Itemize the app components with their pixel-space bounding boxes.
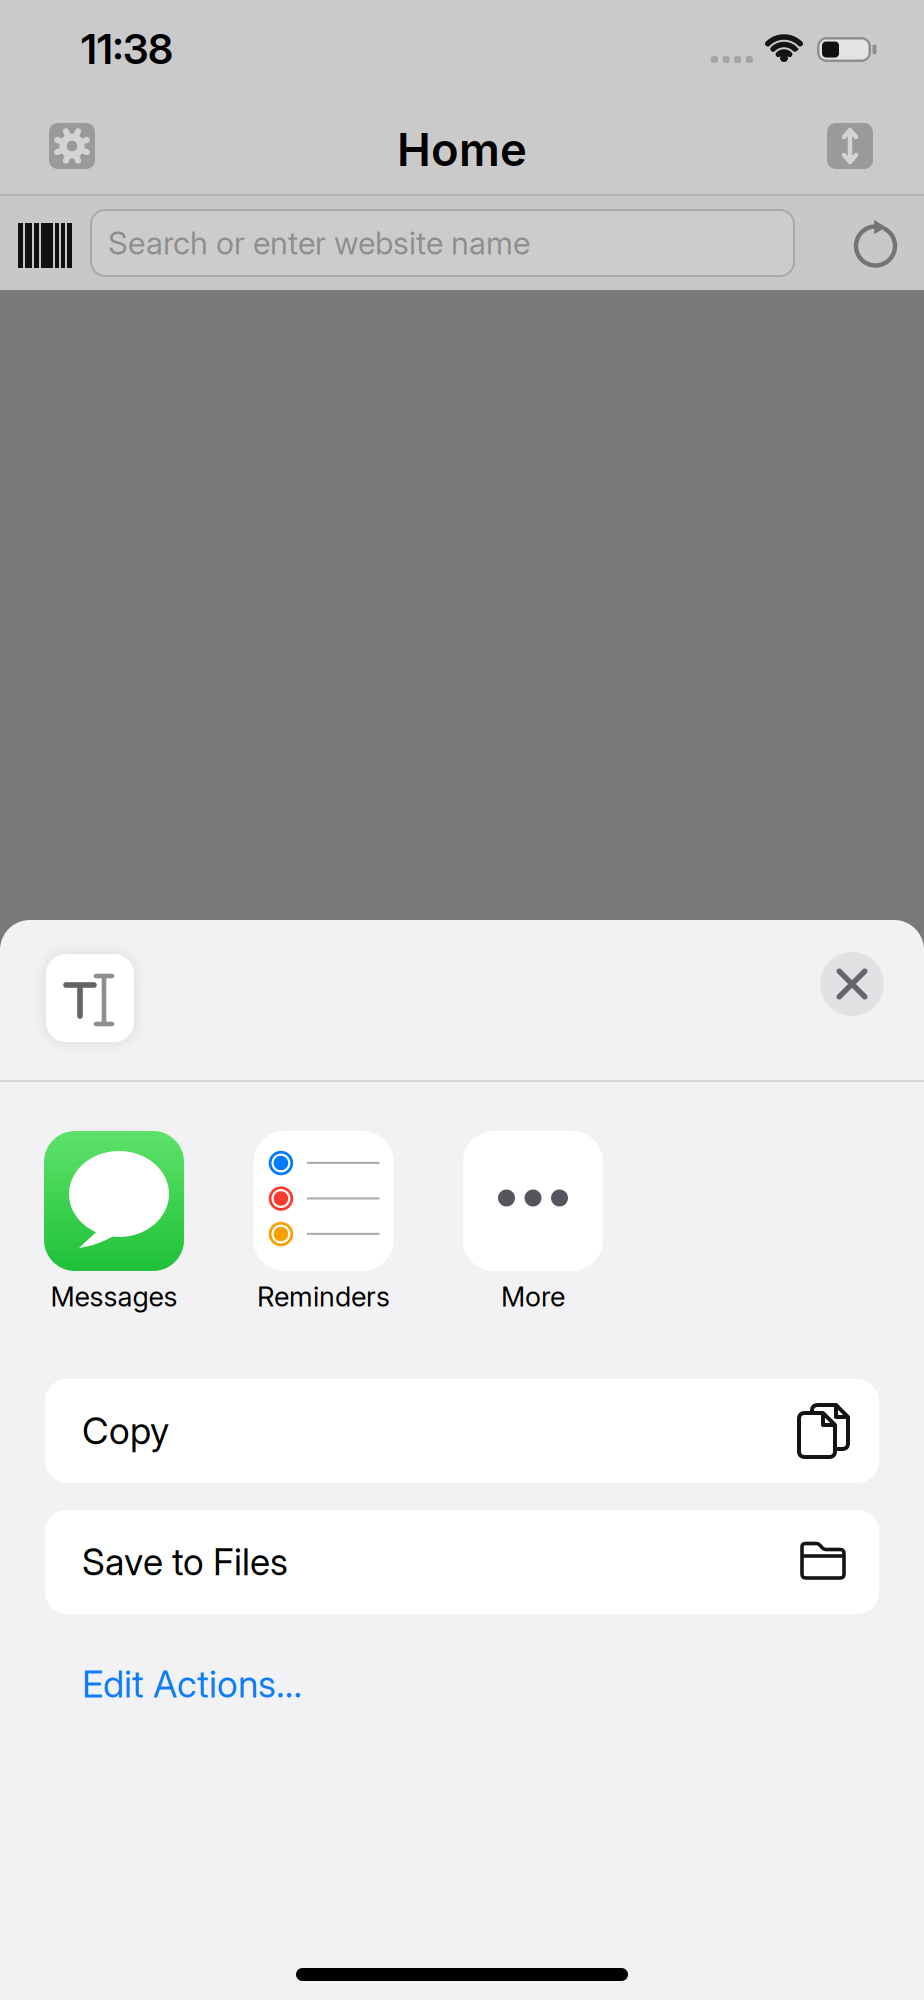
staticText: Home: [397, 122, 527, 177]
button[interactable]: Address bar: [90, 209, 795, 277]
staticText: Save to Files: [82, 1540, 288, 1584]
staticText: Messages: [50, 1280, 177, 1313]
staticText: Search or enter website name: [108, 224, 530, 262]
staticText: Edit Actions…: [82, 1662, 302, 1706]
button[interactable]: Edit Actions…: [82, 1662, 302, 1706]
button[interactable]: Resize text: [827, 123, 873, 169]
button[interactable]: Close: [820, 952, 884, 1016]
button[interactable]: Save to Files: [45, 1510, 879, 1614]
staticText: Reminders: [257, 1280, 390, 1313]
button[interactable]: Reload: [849, 220, 901, 272]
button[interactable]: Copy: [45, 1379, 879, 1483]
button[interactable]: Settings: [49, 123, 95, 169]
button[interactable]: Reminders: [219, 1131, 427, 1313]
button[interactable]: Scan code: [18, 223, 72, 268]
button[interactable]: More: [429, 1131, 637, 1313]
staticText: 11:38: [81, 24, 173, 74]
button[interactable]: Messages: [10, 1131, 218, 1313]
staticText: More: [501, 1280, 565, 1313]
staticText: Copy: [82, 1409, 169, 1453]
